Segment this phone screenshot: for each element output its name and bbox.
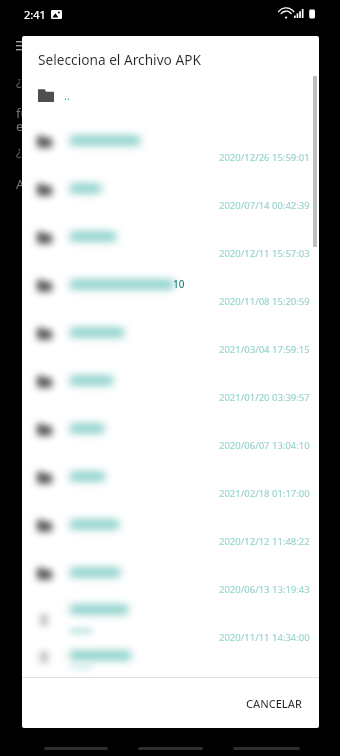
button[interactable]: 2020/11/11 14:34:00 xyxy=(22,604,319,652)
staticText: 2:41 xyxy=(24,7,46,22)
button[interactable]: 2021/01/20 03:39:57 xyxy=(22,364,319,412)
staticText: 2020/12/26 15:59:01 xyxy=(219,151,310,164)
staticText: en el xyxy=(16,117,46,135)
button[interactable]: Home xyxy=(138,747,203,750)
button[interactable]: 2020/07/14 00:42:39 xyxy=(22,172,319,220)
staticText: 2020/07/14 00:42:39 xyxy=(219,199,310,212)
button[interactable] xyxy=(22,652,319,677)
button[interactable]: 2021/03/04 17:59:15 xyxy=(22,316,319,364)
staticText: 2021/02/18 01:17:00 xyxy=(219,487,310,500)
button[interactable]: .. xyxy=(22,77,319,113)
staticText: Selecciona el Archivo APK xyxy=(38,50,201,69)
staticText: Archivo xyxy=(16,175,62,193)
button[interactable]: 2020/06/13 13:19:43 xyxy=(22,556,319,604)
staticText: 2020/12/12 11:48:22 xyxy=(219,535,310,548)
button[interactable]: CANCELAR xyxy=(229,686,319,721)
button[interactable]: Recents xyxy=(233,747,300,750)
staticText: .. xyxy=(64,88,70,103)
staticText: ¿Cómo se usa? xyxy=(16,72,106,90)
button[interactable]: Menu xyxy=(13,38,33,58)
staticText: 10 xyxy=(173,277,185,291)
staticText: ¿Qué es? xyxy=(16,142,70,160)
staticText: 2021/03/04 17:59:15 xyxy=(219,343,310,356)
button[interactable]: 2020/12/12 11:48:22 xyxy=(22,508,319,556)
staticText: 2021/01/20 03:39:57 xyxy=(219,391,310,404)
button[interactable]: 2020/12/11 15:57:03 xyxy=(22,220,319,268)
button[interactable]: 10 xyxy=(22,268,319,316)
button[interactable]: 2020/06/07 13:04:10 xyxy=(22,412,319,460)
staticText: 2020/11/08 15:20:59 xyxy=(219,295,310,308)
button[interactable]: Back xyxy=(44,747,108,750)
staticText: 2020/06/13 13:19:43 xyxy=(219,583,310,596)
staticText: 2020/12/11 15:57:03 xyxy=(219,247,310,260)
button[interactable]: 2021/02/18 01:17:00 xyxy=(22,460,319,508)
staticText: 2020/06/07 13:04:10 xyxy=(219,439,310,452)
staticText: 2020/11/11 14:34:00 xyxy=(219,631,310,644)
staticText: funciona xyxy=(16,104,70,122)
staticText: CANCELAR xyxy=(246,696,302,711)
button[interactable]: 2020/12/26 15:59:01 xyxy=(22,124,319,172)
